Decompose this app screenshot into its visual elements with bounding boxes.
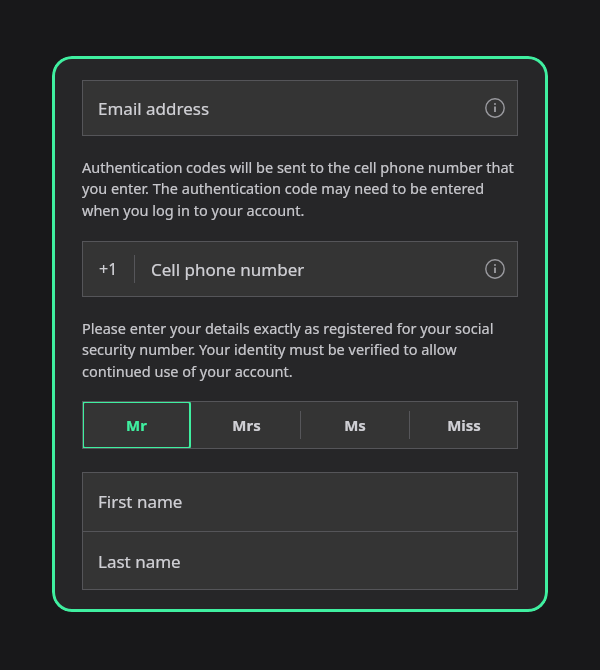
button[interactable]: Last name [82,532,518,590]
staticText: Miss [447,415,481,435]
button[interactable]: +1 [82,241,518,297]
staticText: Mrs [232,415,261,435]
staticText: +1 [99,258,118,280]
button[interactable]: Ms [301,401,409,449]
staticText: Authentication codes will be sent to the… [82,157,518,221]
button[interactable]: Email address [82,80,518,136]
staticText: Please enter your details exactly as reg… [82,318,518,382]
button[interactable]: Mrs [192,401,300,449]
button[interactable]: Mr [82,401,191,449]
staticText: Last name [98,550,181,573]
button[interactable]: First name [82,472,518,531]
staticText: Email address [98,97,210,120]
button[interactable]: Miss [410,401,518,449]
staticText: Ms [344,415,366,435]
button[interactable]: More information [480,254,510,284]
staticText: Mr [126,415,147,435]
button[interactable]: More information [480,93,510,123]
staticText: First name [98,490,183,513]
staticText: Cell phone number [151,258,305,281]
